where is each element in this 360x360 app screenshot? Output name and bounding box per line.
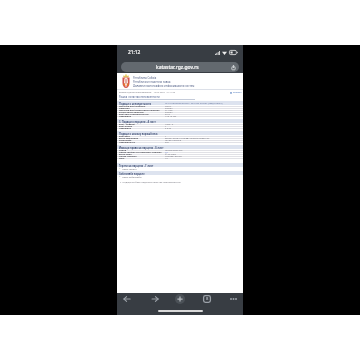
button[interactable]: New tab: [175, 294, 185, 304]
staticText: Имаоци права на парцели - Б лист: [119, 146, 164, 149]
button[interactable]: Терети на парцели - Г лист: [117, 163, 243, 167]
staticText: 220: [165, 141, 169, 143]
staticText: Матични број катастарске општине: [119, 109, 165, 111]
staticText: 1: [165, 135, 167, 137]
button[interactable]: штампа: [230, 91, 242, 94]
staticText: Општина: [119, 107, 165, 109]
staticText: Број листа непокретности: [119, 113, 165, 115]
staticText: Нема забележби: [122, 175, 142, 178]
staticText: Број дела: [119, 135, 165, 137]
staticText: Број - Подброј: [119, 123, 165, 125]
staticText: 1/1: [165, 157, 169, 159]
button[interactable]: Forward: [148, 293, 161, 304]
staticText: 1/1: [165, 151, 169, 153]
button[interactable]: Имаоци права на парцели - Б лист: [117, 145, 243, 149]
staticText: Основ: [119, 149, 165, 151]
staticText: штампа: [233, 91, 242, 94]
staticText: 8: [206, 296, 209, 302]
button[interactable]: Tabs: [200, 293, 213, 304]
staticText: Начин стицања: [119, 155, 165, 157]
staticText: 1.: [119, 167, 121, 170]
staticText: 1: [165, 125, 167, 127]
staticText: ЛИСТ НЕПОКРЕТНОСТИ 2341 КО РАШКА (Град Р…: [165, 102, 223, 105]
staticText: ПРАВО СВОЈИНЕ: [165, 149, 183, 151]
staticText: НАСЛЕЂИВАЊЕ: [165, 155, 182, 157]
staticText: Забележбе парцеле: [119, 172, 145, 175]
button[interactable]: 3. Подаци о парцели - А лист: [117, 119, 243, 123]
staticText: Катастарска општина: [119, 111, 165, 113]
staticText: 70017: [165, 105, 172, 107]
staticText: * Подаци из базе података катастра непок…: [120, 180, 181, 183]
staticText: Терети на парцели - Г лист: [119, 164, 154, 167]
button[interactable]: More: [227, 293, 240, 304]
staticText: Подаци о непокретности: [119, 102, 152, 105]
staticText: Врста земљишта: [119, 137, 165, 139]
staticText: ЊИВА 3 КЛАСЕ: [165, 139, 181, 141]
staticText: 1.: [119, 175, 121, 178]
staticText: Рашка, катастар непокретности: [119, 95, 160, 98]
staticText: 14 a 16 m2: [165, 115, 177, 117]
staticText: Нема терета: [122, 167, 137, 170]
button[interactable]: Подаци о непокретности: [117, 101, 243, 105]
button[interactable]: Подаци о начину коришћења: [117, 131, 243, 135]
staticText: Република Србија: [133, 76, 157, 79]
staticText: Облик својине на земљишту парцеле: [119, 151, 165, 153]
staticText: 2 a 20: [165, 127, 172, 129]
staticText: katastar.rgz.gov.rs: [156, 64, 199, 71]
staticText: 711136: [165, 109, 173, 111]
staticText: РАШКА: [165, 111, 173, 113]
staticText: 21:12: [128, 49, 141, 56]
staticText: 3. Подаци о парцели - А лист: [119, 120, 156, 123]
staticText: Државни картографско информациони систем: [133, 84, 195, 87]
staticText: ЗЕМЉИШТЕ У ГРАЂЕВИНСКОМ ПОДРУЧЈУ: [165, 137, 210, 139]
staticText: 1382 / 5: [165, 123, 174, 125]
staticText: РАШКА: [165, 107, 173, 109]
staticText: Удео: [119, 157, 165, 159]
button[interactable]: katastar.rgz.gov.rs: [121, 62, 239, 72]
staticText: Површина: [119, 115, 165, 117]
staticText: Површина: [119, 127, 165, 129]
staticText: Категорија: [119, 139, 165, 141]
button[interactable]: Забележбе парцеле: [117, 171, 243, 175]
staticText: Површина m2: [119, 141, 165, 143]
staticText: Републички геодетски завод: [133, 80, 171, 83]
staticText: 2317: [165, 113, 171, 115]
other: Share: [230, 64, 236, 70]
staticText: Матични број општине: [119, 105, 165, 107]
staticText: Број зграде: [119, 125, 165, 127]
staticText: ФИЗИЧКО: [165, 153, 176, 155]
staticText: Подаци о начину коришћења: [119, 132, 158, 135]
staticText: Врста лица: [119, 153, 165, 155]
button[interactable]: Back: [120, 293, 133, 304]
staticText: Време и датум претраживања: 12.02.2024 2…: [119, 91, 176, 94]
